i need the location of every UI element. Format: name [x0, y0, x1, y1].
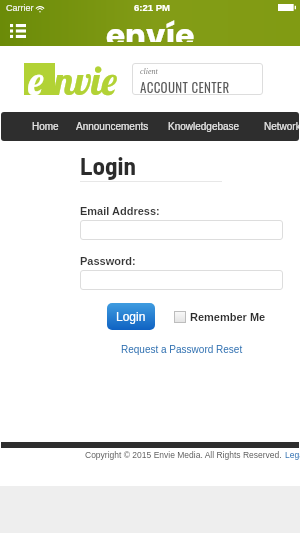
staticText: Knowledgebase [168, 121, 240, 132]
staticText: Network S [264, 121, 299, 132]
staticText: client [140, 67, 158, 76]
staticText: Password: [80, 255, 136, 267]
staticText: ACCOUNT CENTER [140, 77, 230, 96]
staticText: Remember Me [190, 311, 266, 323]
button[interactable]: Menu [4, 21, 32, 41]
staticText: 6:21 PM [134, 2, 170, 13]
button[interactable]: Email Address [80, 220, 283, 240]
button[interactable]: Password [80, 270, 283, 290]
button[interactable]: Network S [264, 112, 299, 141]
button[interactable]: Home [32, 112, 59, 141]
button[interactable]: Announcements [76, 112, 149, 141]
staticText: Home [32, 121, 59, 132]
staticText: Carrier [6, 3, 34, 13]
button[interactable]: Remember Me [174, 308, 266, 325]
staticText: Login [116, 310, 146, 323]
button[interactable]: Legal [285, 450, 300, 459]
staticText: envíe [106, 14, 195, 42]
staticText: Copyright © 2015 Envie Media. All Rights… [85, 450, 282, 459]
staticText: nvie [54, 55, 118, 105]
button[interactable]: Login [107, 303, 155, 330]
staticText: Announcements [76, 121, 149, 132]
button[interactable]: Knowledgebase [168, 112, 240, 141]
staticText: Email Address: [80, 205, 160, 217]
button[interactable]: Request a Password Reset [121, 344, 243, 355]
staticText: Login [80, 150, 136, 180]
staticText: e [28, 55, 44, 105]
